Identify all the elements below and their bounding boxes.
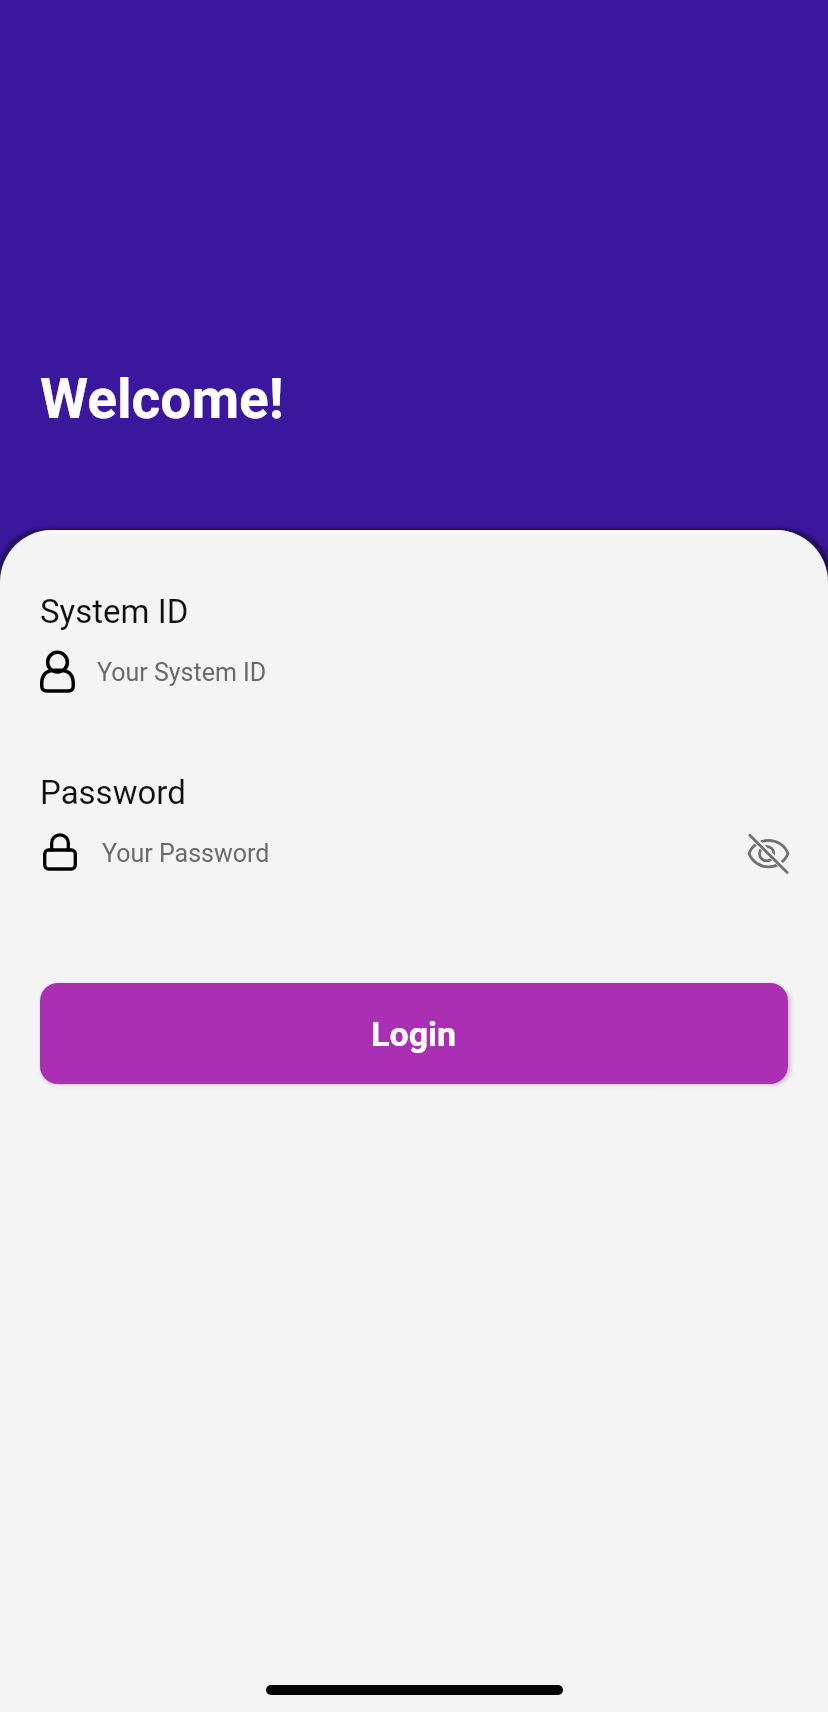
staticText: Your Password bbox=[102, 839, 735, 868]
staticText: Password bbox=[40, 773, 186, 812]
button[interactable]: Your Password bbox=[0, 817, 828, 889]
staticText: Login bbox=[371, 1014, 457, 1054]
button[interactable]: Your System ID bbox=[0, 636, 828, 708]
button[interactable]: Login bbox=[40, 983, 788, 1084]
button[interactable]: Show password bbox=[735, 820, 801, 886]
staticText: Your System ID bbox=[97, 658, 267, 687]
staticText: Welcome! bbox=[40, 367, 284, 431]
staticText: System ID bbox=[40, 592, 189, 631]
